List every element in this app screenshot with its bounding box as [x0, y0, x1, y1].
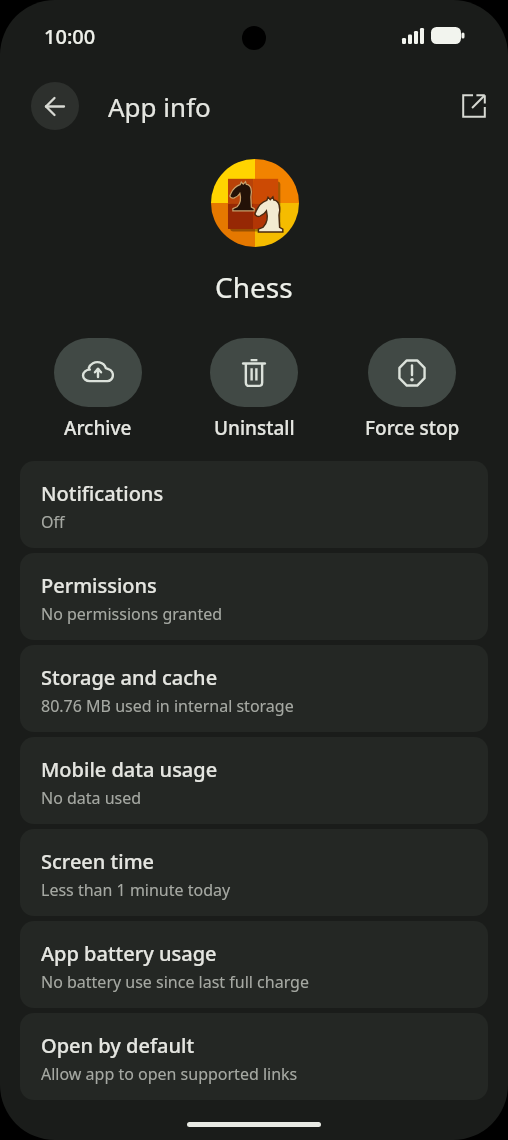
staticText: Open by default — [41, 1032, 195, 1059]
button[interactable] — [453, 85, 495, 127]
button[interactable]: Screen time — [20, 829, 488, 916]
staticText: Off — [41, 511, 65, 533]
staticText: Archive — [64, 415, 132, 441]
button[interactable] — [31, 82, 79, 130]
staticText: Permissions — [41, 572, 157, 599]
staticText: No battery use since last full charge — [41, 971, 309, 993]
staticText: Screen time — [41, 848, 155, 875]
staticText: 80.76 MB used in internal storage — [41, 695, 294, 717]
staticText: Mobile data usage — [41, 756, 218, 783]
button[interactable]: Storage and cache — [20, 645, 488, 732]
button[interactable]: App battery usage — [20, 921, 488, 1008]
staticText: No data used — [41, 787, 142, 809]
staticText: App battery usage — [41, 940, 217, 967]
staticText: No permissions granted — [41, 603, 223, 625]
staticText: Chess — [215, 268, 293, 306]
staticText: Less than 1 minute today — [41, 879, 231, 901]
staticText: Force stop — [365, 415, 460, 441]
staticText: App info — [108, 89, 211, 124]
staticText: Allow app to open supported links — [41, 1063, 298, 1085]
staticText: Notifications — [41, 480, 164, 507]
staticText: 10:00 — [44, 23, 96, 50]
staticText: Uninstall — [214, 415, 295, 441]
staticText: Storage and cache — [41, 664, 218, 691]
button[interactable] — [368, 338, 456, 407]
button[interactable]: Permissions — [20, 553, 488, 640]
button[interactable]: Mobile data usage — [20, 737, 488, 824]
button[interactable] — [210, 338, 298, 407]
button[interactable]: Open by default — [20, 1013, 488, 1100]
button[interactable]: Notifications — [20, 461, 488, 548]
button[interactable] — [54, 338, 142, 407]
